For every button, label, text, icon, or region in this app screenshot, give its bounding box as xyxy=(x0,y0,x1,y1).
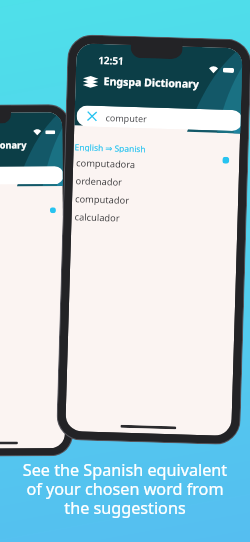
staticText: computadora xyxy=(76,156,136,171)
staticText: 12:51 xyxy=(98,53,124,66)
button[interactable]: calculador xyxy=(71,207,238,230)
button[interactable]: Clear search xyxy=(0,166,63,185)
staticText: Engspa Dictionary xyxy=(103,74,200,91)
button[interactable]: Clear search xyxy=(76,105,241,131)
button[interactable]: ordenador xyxy=(72,171,239,194)
other: Clear search xyxy=(87,112,97,121)
staticText: Engspa Dictionary xyxy=(0,138,27,152)
staticText: ordenador xyxy=(75,174,123,189)
button[interactable]: calculador xyxy=(0,256,63,273)
staticText: calculador xyxy=(74,210,121,225)
staticText: See the Spanish equivalent of your chose… xyxy=(0,459,250,519)
button[interactable]: computador xyxy=(72,189,238,212)
staticText: English ⇒ Spanish xyxy=(74,141,146,153)
button[interactable]: computadora xyxy=(73,153,239,176)
button[interactable]: computador xyxy=(0,240,63,257)
staticText: computador xyxy=(75,192,129,207)
button[interactable]: ordenador xyxy=(0,224,63,241)
button[interactable]: computadora xyxy=(0,208,63,225)
staticText: computer xyxy=(105,111,148,124)
